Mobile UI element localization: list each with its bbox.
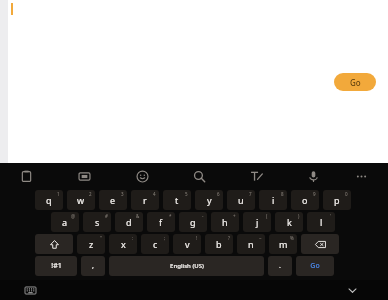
staticText: d	[126, 216, 132, 228]
button[interactable]: Go	[296, 256, 334, 276]
staticText: i	[272, 194, 275, 206]
button[interactable]: f	[147, 212, 175, 232]
button[interactable]: j	[243, 212, 271, 232]
staticText: #	[105, 213, 108, 219]
button[interactable]: o	[291, 190, 319, 210]
button[interactable]: a	[51, 212, 79, 232]
staticText: w	[77, 194, 85, 206]
button[interactable]: More options	[348, 163, 374, 189]
button[interactable]: !#1	[35, 256, 77, 276]
staticText: +	[233, 213, 236, 219]
button[interactable]: x	[109, 234, 137, 254]
staticText: p	[334, 194, 340, 206]
staticText: .	[279, 261, 281, 271]
button[interactable]: r	[131, 190, 159, 210]
staticText: 1	[57, 191, 60, 197]
staticText: :	[132, 235, 134, 241]
staticText: ?	[228, 235, 230, 241]
staticText: 4	[153, 191, 156, 197]
staticText: ,	[92, 261, 94, 271]
staticText: m	[279, 238, 288, 250]
staticText: @	[71, 213, 76, 219]
staticText: Go	[350, 77, 361, 88]
staticText: a	[62, 216, 68, 228]
staticText: '	[330, 213, 332, 219]
staticText: r	[143, 194, 147, 206]
button[interactable]: m	[269, 234, 297, 254]
staticText: 9	[313, 191, 316, 197]
button[interactable]: Stickers	[71, 163, 97, 189]
staticText: v	[185, 238, 190, 250]
button[interactable]: Backspace	[301, 234, 339, 254]
staticText: l	[320, 216, 323, 228]
staticText: 2	[89, 191, 92, 197]
staticText: b	[216, 238, 222, 250]
button[interactable]: n	[237, 234, 265, 254]
button[interactable]: c	[141, 234, 169, 254]
button[interactable]: v	[173, 234, 201, 254]
button[interactable]: b	[205, 234, 233, 254]
staticText: "	[100, 235, 102, 241]
button[interactable]: Hide keyboard	[342, 280, 362, 300]
staticText: y	[207, 194, 212, 206]
staticText: j	[256, 216, 259, 228]
button[interactable]: z	[77, 234, 105, 254]
button[interactable]: Shift	[35, 234, 73, 254]
staticText: q	[46, 194, 52, 206]
button[interactable]: Emoji	[129, 163, 155, 189]
staticText: (	[266, 213, 268, 219]
button[interactable]: i	[259, 190, 287, 210]
button[interactable]: q	[35, 190, 63, 210]
staticText: g	[190, 216, 196, 228]
staticText: o	[302, 194, 308, 206]
staticText: !	[196, 235, 198, 241]
staticText: Go	[310, 261, 320, 271]
button[interactable]: ,	[81, 256, 105, 276]
staticText: 8	[281, 191, 284, 197]
button[interactable]: d	[115, 212, 143, 232]
button[interactable]: English (US)	[109, 256, 264, 276]
staticText: h	[222, 216, 228, 228]
button[interactable]: Switch keyboard	[20, 280, 40, 300]
button[interactable]: Go	[334, 73, 376, 91]
button[interactable]: Voice input	[300, 163, 326, 189]
staticText: 5	[185, 191, 188, 197]
button[interactable]: g	[179, 212, 207, 232]
staticText: 0	[345, 191, 348, 197]
staticText: &	[136, 213, 140, 219]
staticText: !#1	[51, 261, 62, 271]
staticText: n	[248, 238, 254, 250]
button[interactable]: k	[275, 212, 303, 232]
button[interactable]: Handwriting	[243, 163, 269, 189]
staticText: 3	[121, 191, 124, 197]
button[interactable]: p	[323, 190, 351, 210]
button[interactable]: t	[163, 190, 191, 210]
staticText: t	[175, 194, 179, 206]
button[interactable]: u	[227, 190, 255, 210]
staticText: e	[110, 194, 116, 206]
staticText: *	[169, 213, 172, 219]
staticText: %	[290, 235, 294, 241]
staticText: 6	[217, 191, 220, 197]
button[interactable]: .	[268, 256, 292, 276]
staticText: English (US)	[170, 262, 204, 270]
button[interactable]: w	[67, 190, 95, 210]
staticText: c	[153, 238, 158, 250]
staticText: )	[298, 213, 300, 219]
staticText: s	[95, 216, 100, 228]
staticText: z	[89, 238, 94, 250]
staticText: u	[238, 194, 244, 206]
button[interactable]: Clipboard	[13, 163, 39, 189]
staticText: ~	[259, 235, 262, 241]
button[interactable]: h	[211, 212, 239, 232]
button[interactable]: y	[195, 190, 223, 210]
button[interactable]: e	[99, 190, 127, 210]
button[interactable]: Search	[186, 163, 212, 189]
staticText: f	[159, 216, 163, 228]
button[interactable]: l	[307, 212, 335, 232]
staticText: 7	[249, 191, 252, 197]
staticText: x	[121, 238, 126, 250]
staticText: -	[202, 213, 204, 219]
button[interactable]: s	[83, 212, 111, 232]
staticText: ;	[164, 235, 166, 241]
